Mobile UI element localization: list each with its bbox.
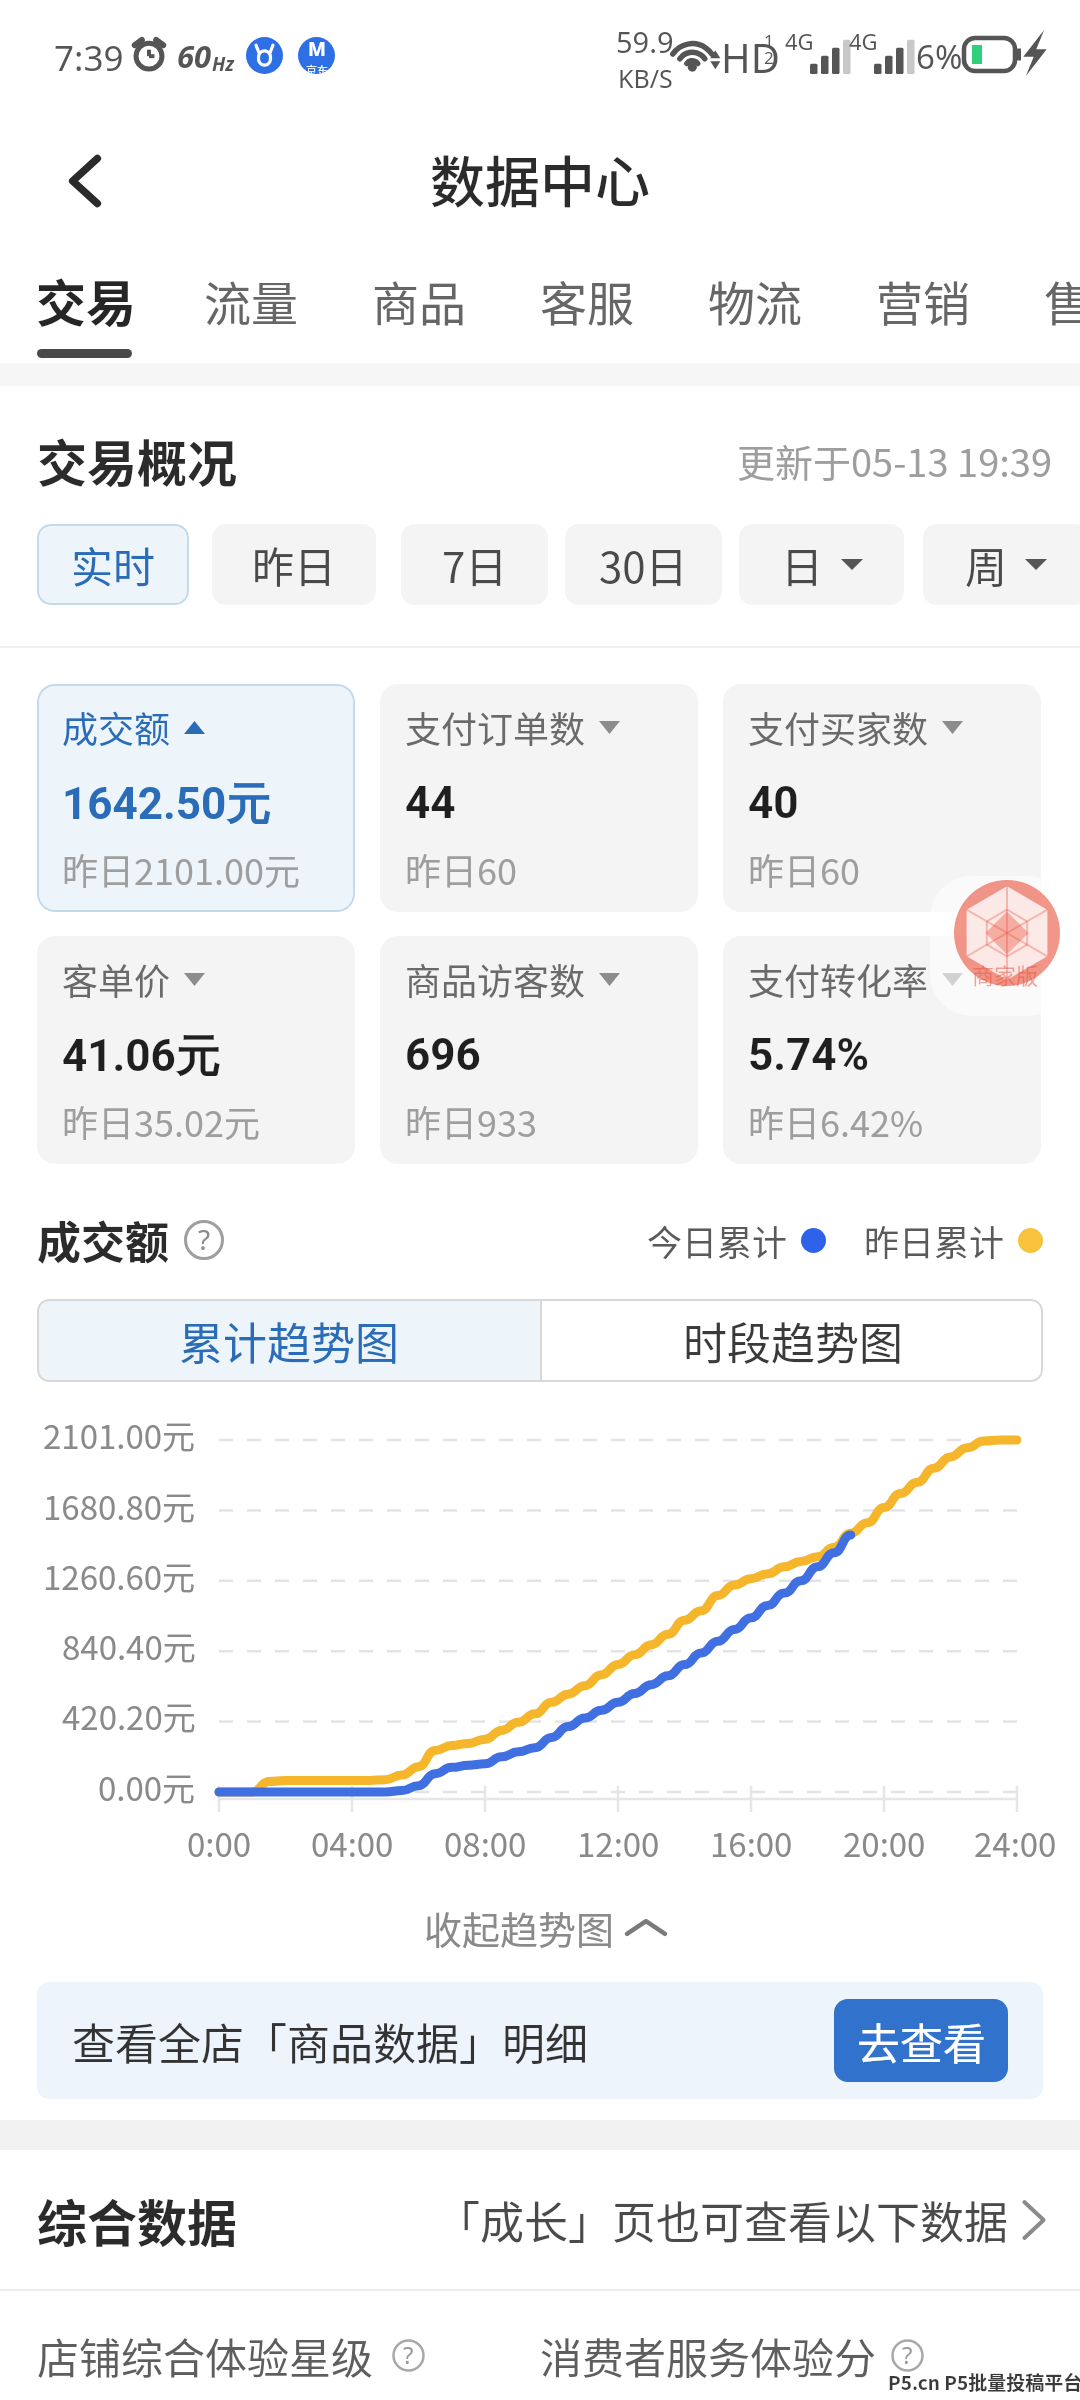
staticText: 成交额 [62,701,171,753]
staticText: 7日 [442,534,508,595]
button[interactable]: 7日 [401,524,548,605]
staticText: 0.00元 [98,1763,196,1811]
staticText: 41.06元 [62,1029,220,1084]
button[interactable]: Help [184,1220,224,1260]
button[interactable]: 收起趋势图 [424,1890,665,1964]
staticText: 客服 [540,266,634,334]
staticText: 累计趋势图 [179,1309,399,1373]
staticText: 昨日2101.00元 [62,843,300,895]
staticText: 交易概况 [37,424,237,496]
staticText: 今日累计 [647,1215,788,1266]
staticText: 12:00 [577,1819,660,1867]
staticText: 4G [849,26,878,56]
staticText: 支付订单数 [405,701,586,753]
staticText: 1642.50元 [62,777,271,832]
staticText: 查看全店「商品数据」明细 [72,2010,588,2072]
button[interactable]: 支付买家数 [723,684,1041,912]
staticText: 成交额 [37,1208,169,1272]
staticText: 1 [764,29,774,52]
staticText: 流量 [204,266,298,334]
staticText: ? [403,2338,414,2371]
button[interactable]: 昨日 [212,524,376,605]
staticText: 24:00 [974,1819,1057,1867]
staticText: 商品访客数 [405,953,586,1005]
staticText: 08:00 [444,1819,527,1867]
button[interactable]: 周 [923,524,1080,605]
staticText: ? [902,2338,913,2371]
button[interactable]: 营销 [876,264,970,336]
staticText: 5.74% [748,1029,870,1081]
staticText: 综合数据 [37,2184,237,2256]
staticText: 数据中心 [430,138,651,218]
staticText: 昨日60 [405,843,517,895]
staticText: Hz [212,51,235,77]
staticText: 时段趋势图 [683,1309,903,1373]
staticText: 客单价 [62,953,171,1005]
staticText: 2 [764,46,774,69]
staticText: M [308,37,326,62]
button[interactable]: 累计趋势图 [37,1299,540,1382]
staticText: 商家版 [972,958,1039,990]
button[interactable]: 流量 [204,264,298,336]
staticText: 店铺综合体验星级 [37,2325,374,2386]
staticText: 1680.80元 [43,1482,196,1530]
staticText: 20:00 [843,1819,926,1867]
button[interactable]: Back [40,136,130,226]
button[interactable]: 物流 [708,264,802,336]
staticText: 7:39 [54,34,124,82]
button[interactable]: 「成长」页也可查看以下数据 [436,2188,1046,2252]
button[interactable]: Help [891,2339,924,2372]
button[interactable]: 30日 [565,524,722,605]
button[interactable]: 商品访客数 [380,936,698,1164]
button[interactable]: 时段趋势图 [542,1299,1043,1382]
button[interactable]: 交易 [36,264,136,336]
staticText: 59.9 [616,22,674,61]
staticText: 收起趋势图 [424,1900,615,1955]
button[interactable]: 售 [1044,264,1080,336]
button[interactable]: 商品 [372,264,466,336]
staticText: 30日 [599,534,688,595]
staticText: KB/S [618,61,673,95]
button[interactable]: 日 [739,524,904,605]
staticText: 日 [781,534,824,595]
staticText: 4G [785,26,814,56]
staticText: 周 [965,534,1008,595]
staticText: HD [721,30,780,84]
staticText: 昨日6.42% [748,1095,924,1147]
staticText: 支付买家数 [748,701,929,753]
button[interactable]: 实时 [37,524,189,605]
staticText: 840.40元 [62,1622,196,1670]
staticText: 16:00 [710,1819,793,1867]
staticText: 昨日累计 [864,1215,1005,1266]
staticText: 696 [405,1029,481,1081]
staticText: 昨日60 [748,843,860,895]
staticText: 0:00 [187,1819,252,1867]
staticText: 420.20元 [62,1692,196,1740]
staticText: 物流 [708,266,802,334]
staticText: 去查看 [857,2010,986,2072]
staticText: 昨日 [252,534,337,595]
staticText: 支付转化率 [748,953,929,1005]
staticText: 44 [405,777,456,829]
button[interactable]: 成交额 [37,684,355,912]
staticText: 昨日35.02元 [62,1095,260,1147]
button[interactable]: 客服 [540,264,634,336]
staticText: 昨日933 [405,1095,537,1147]
staticText: 售 [1044,266,1080,334]
staticText: 消费者服务体验分 [540,2325,877,2386]
staticText: 营销 [876,266,970,334]
staticText: 60 [177,35,212,77]
button[interactable]: 支付转化率 [723,936,1041,1164]
staticText: 更新于05-13 19:39 [737,433,1052,488]
button[interactable]: Help [392,2339,425,2372]
staticText: 京东 [306,62,328,73]
staticText: ? [198,1220,211,1258]
staticText: 商品 [372,266,466,334]
staticText: 6% [916,34,963,79]
staticText: 2101.00元 [43,1411,196,1459]
button[interactable]: 去查看 [834,1999,1008,2082]
button[interactable]: 客单价 [37,936,355,1164]
staticText: 实时 [71,534,156,595]
button[interactable]: 支付订单数 [380,684,698,912]
staticText: 04:00 [311,1819,394,1867]
